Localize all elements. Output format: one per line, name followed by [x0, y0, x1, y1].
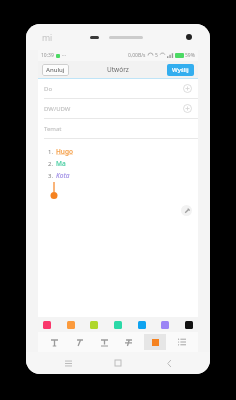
staticText: 10:39: [41, 52, 54, 59]
staticText: Ma: [56, 159, 66, 168]
button[interactable]: Add recipient: [183, 84, 192, 93]
button[interactable]: Anuluj: [42, 64, 69, 76]
button[interactable]: Color: [67, 321, 75, 329]
button[interactable]: Color: [185, 321, 193, 329]
button[interactable]: Bulleted list: [173, 334, 191, 350]
button[interactable]: Underline: [95, 334, 113, 350]
button[interactable]: Temat: [38, 119, 198, 138]
staticText: Utwórz: [107, 65, 129, 74]
button[interactable]: Italic: [70, 334, 88, 350]
button[interactable]: Bold: [45, 334, 63, 350]
staticText: 2.: [48, 160, 54, 168]
button[interactable]: Color: [90, 321, 98, 329]
button[interactable]: Attach file: [181, 205, 192, 216]
button[interactable]: Color: [138, 321, 146, 329]
staticText: 3.: [48, 172, 54, 180]
button[interactable]: DW/UDW: [38, 99, 198, 118]
button[interactable]: Do: [38, 79, 198, 98]
staticText: ···: [62, 52, 67, 59]
staticText: Do: [44, 85, 53, 93]
button[interactable]: Text color: [144, 334, 166, 350]
staticText: 0,00B/s: [128, 52, 146, 59]
staticText: Anuluj: [46, 66, 65, 74]
staticText: DW/UDW: [44, 105, 71, 113]
button[interactable]: Menu: [59, 354, 77, 372]
staticText: mi: [42, 31, 53, 43]
button[interactable]: Color: [161, 321, 169, 329]
button[interactable]: Add recipient: [183, 104, 192, 113]
button[interactable]: Color: [43, 321, 51, 329]
staticText: 1.: [48, 148, 54, 156]
staticText: Kota: [56, 171, 70, 180]
staticText: 5: [155, 52, 158, 59]
staticText: Temat: [44, 125, 62, 133]
button[interactable]: Wyślij: [167, 64, 194, 76]
button[interactable]: Color: [114, 321, 122, 329]
button[interactable]: Home: [109, 354, 127, 372]
staticText: Hugo: [56, 147, 73, 156]
staticText: 59%: [185, 52, 195, 59]
staticText: Wyślij: [172, 66, 189, 74]
button[interactable]: Strikethrough: [119, 334, 137, 350]
button[interactable]: Back: [160, 354, 178, 372]
